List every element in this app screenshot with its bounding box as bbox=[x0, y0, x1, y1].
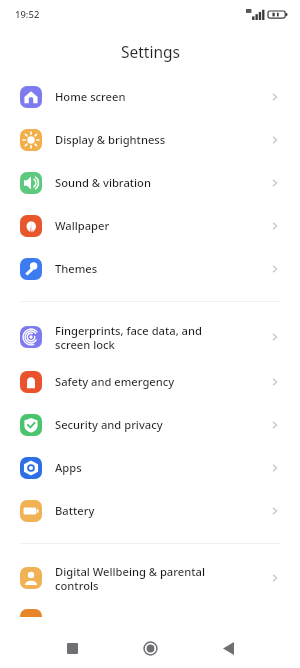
button[interactable]: Security and privacy bbox=[0, 403, 300, 446]
staticText: Themes bbox=[55, 261, 98, 276]
button[interactable]: Sound & vibration bbox=[0, 161, 300, 204]
button[interactable]: Back bbox=[189, 628, 267, 668]
staticText: Safety and emergency bbox=[55, 374, 175, 389]
button[interactable]: Display & brightness bbox=[0, 118, 300, 161]
staticText: Digital Wellbeing & parental controls bbox=[55, 564, 205, 593]
staticText: Wallpaper bbox=[55, 218, 110, 233]
staticText: Security and privacy bbox=[55, 417, 163, 432]
button[interactable] bbox=[0, 609, 300, 617]
button[interactable]: Home bbox=[111, 628, 189, 668]
button[interactable]: Recent apps bbox=[33, 628, 111, 668]
staticText: Settings bbox=[121, 41, 180, 62]
button[interactable]: Digital Wellbeing & parental controls bbox=[0, 555, 300, 601]
button[interactable]: Battery bbox=[0, 489, 300, 532]
button[interactable]: Themes bbox=[0, 247, 300, 290]
staticText: Apps bbox=[55, 460, 82, 475]
button[interactable]: Home screen bbox=[0, 75, 300, 118]
staticText: Fingerprints, face data, and screen lock bbox=[55, 323, 202, 352]
button[interactable]: Wallpaper bbox=[0, 204, 300, 247]
button[interactable]: Fingerprints, face data, and screen lock bbox=[0, 314, 300, 360]
staticText: Display & brightness bbox=[55, 132, 166, 147]
button[interactable]: Safety and emergency bbox=[0, 360, 300, 403]
staticText: 19:52 bbox=[15, 8, 40, 21]
button[interactable]: Apps bbox=[0, 446, 300, 489]
staticText: Sound & vibration bbox=[55, 175, 151, 190]
staticText: Home screen bbox=[55, 89, 126, 104]
staticText: Battery bbox=[55, 503, 95, 518]
